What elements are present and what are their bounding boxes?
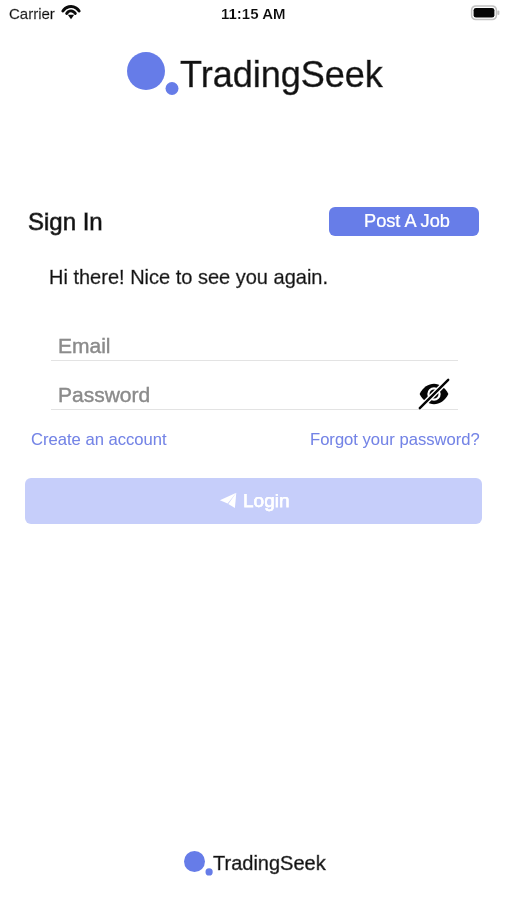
staticText: Login bbox=[243, 490, 290, 511]
staticText: Forgot your password? bbox=[310, 430, 480, 449]
button[interactable]: Show password bbox=[414, 376, 454, 412]
staticText: Sign In bbox=[28, 208, 103, 235]
staticText: Hi there! Nice to see you again. bbox=[49, 266, 329, 288]
staticText: 11:15 AM bbox=[221, 5, 286, 22]
staticText: Login bbox=[243, 490, 290, 511]
staticText: Carrier bbox=[9, 5, 55, 22]
staticText: Email bbox=[58, 334, 111, 357]
button[interactable]: Login bbox=[25, 478, 482, 524]
staticText: Password bbox=[58, 383, 151, 406]
staticText: Hi there! Nice to see you again. bbox=[49, 266, 329, 288]
staticText: TradingSeek bbox=[180, 54, 383, 94]
staticText: Carrier bbox=[9, 5, 55, 22]
button[interactable]: Forgot your password? bbox=[307, 428, 479, 450]
staticText: TradingSeek bbox=[213, 852, 326, 874]
staticText: TradingSeek bbox=[180, 54, 383, 94]
staticText: Email bbox=[58, 334, 111, 357]
button[interactable]: Create an account bbox=[28, 428, 167, 450]
staticText: Sign In bbox=[28, 208, 103, 235]
staticText: Post A Job bbox=[364, 211, 450, 231]
staticText: Create an account bbox=[31, 430, 167, 449]
staticText: TradingSeek bbox=[213, 852, 326, 874]
button[interactable]: Post A Job bbox=[329, 207, 479, 236]
staticText: Password bbox=[58, 383, 151, 406]
